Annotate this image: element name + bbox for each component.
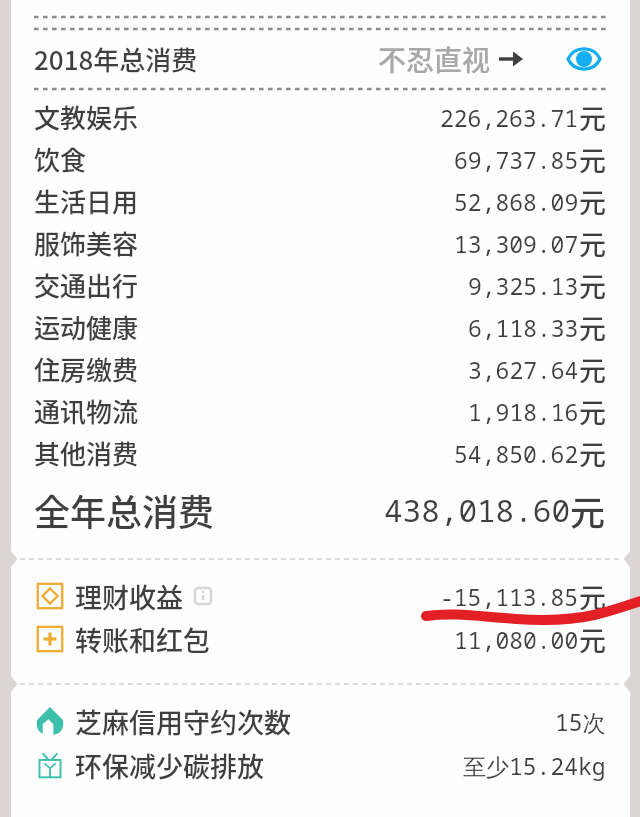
staticText: 2018年总消费: [34, 40, 198, 78]
staticText: 元: [579, 140, 606, 179]
staticText: 住房缴费: [34, 350, 139, 388]
staticText: 元: [579, 98, 606, 137]
staticText: 不忍直视: [378, 39, 491, 80]
staticText: 9,325.13: [468, 270, 579, 301]
staticText: 交通出行: [34, 266, 139, 304]
button[interactable]: 环保减少碳排放: [11, 745, 630, 785]
staticText: 转账和红包: [75, 620, 210, 659]
staticText: 1,918.16: [468, 396, 579, 427]
staticText: 438,018.60: [384, 489, 570, 531]
staticText: 运动健康: [34, 308, 139, 346]
staticText: 52,868.09: [454, 186, 579, 217]
button[interactable]: 运动健康: [11, 306, 630, 348]
staticText: 15次: [555, 706, 606, 737]
button[interactable]: 服饰美容: [11, 222, 630, 264]
staticText: 全年总消费: [34, 484, 215, 536]
button[interactable]: Toggle visibility: [566, 45, 602, 73]
staticText: 6,118.33: [468, 312, 579, 343]
staticText: 至少15.24kg: [463, 750, 606, 781]
staticText: 元: [579, 577, 606, 616]
staticText: 生活日用: [34, 182, 139, 220]
button[interactable]: 通讯物流: [11, 390, 630, 432]
staticText: 元: [579, 620, 606, 659]
button[interactable]: 全年总消费: [11, 484, 630, 536]
staticText: 元: [579, 434, 606, 473]
button[interactable]: 文教娱乐: [11, 96, 630, 138]
button[interactable]: More: [497, 48, 525, 70]
staticText: 13,309.07: [454, 228, 579, 259]
staticText: 69,737.85: [454, 144, 579, 175]
button[interactable]: 2018年总消费: [11, 38, 630, 80]
staticText: 元: [579, 392, 606, 431]
button[interactable]: 饮食: [11, 138, 630, 180]
staticText: 元: [579, 182, 606, 221]
button[interactable]: 住房缴费: [11, 348, 630, 390]
staticText: 元: [579, 308, 606, 347]
staticText: 元: [579, 350, 606, 389]
staticText: 文教娱乐: [34, 98, 139, 136]
staticText: 元: [579, 266, 606, 305]
staticText: 理财收益: [75, 577, 183, 616]
staticText: 服饰美容: [34, 224, 139, 262]
staticText: 饮食: [34, 140, 87, 178]
staticText: 通讯物流: [34, 392, 139, 430]
button[interactable]: 转账和红包: [11, 619, 630, 659]
staticText: -15,113.85: [440, 581, 579, 612]
button[interactable]: 其他消费: [11, 432, 630, 474]
staticText: 环保减少碳排放: [75, 746, 264, 785]
button[interactable]: 理财收益: [11, 576, 630, 616]
staticText: 3,627.64: [468, 354, 579, 385]
staticText: 其他消费: [34, 434, 139, 472]
button[interactable]: 芝麻信用守约次数: [11, 701, 630, 741]
staticText: 元: [579, 224, 606, 263]
staticText: 元: [570, 485, 606, 536]
staticText: 226,263.71: [440, 102, 579, 133]
button[interactable]: 交通出行: [11, 264, 630, 306]
staticText: 54,850.62: [454, 438, 579, 469]
staticText: 11,080.00: [454, 624, 579, 655]
button[interactable]: 生活日用: [11, 180, 630, 222]
staticText: 芝麻信用守约次数: [75, 702, 291, 741]
